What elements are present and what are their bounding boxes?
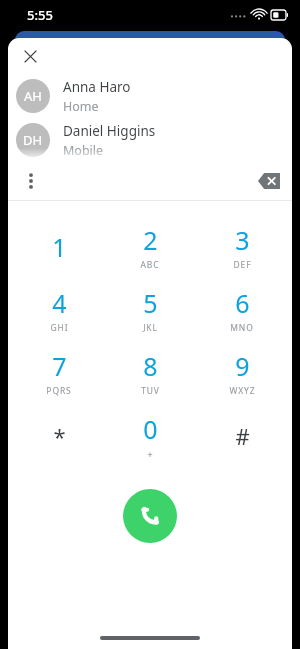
button[interactable]: More options — [12, 162, 50, 200]
staticText: 4 — [52, 286, 67, 320]
button[interactable]: 8 — [109, 341, 191, 404]
staticText: DH — [23, 131, 43, 149]
button[interactable]: 1 — [18, 215, 100, 278]
button[interactable]: DH — [8, 118, 292, 162]
staticText: + — [147, 448, 154, 460]
staticText: ABC — [140, 259, 160, 271]
staticText: 2 — [143, 223, 158, 257]
staticText: MNO — [230, 322, 254, 334]
button[interactable]: Backspace — [250, 162, 288, 200]
staticText: Home — [63, 98, 99, 115]
staticText: JKL — [143, 322, 158, 334]
staticText: WXYZ — [229, 385, 256, 397]
button[interactable]: Call — [123, 489, 177, 543]
button[interactable]: * — [18, 404, 100, 467]
button[interactable]: 9 — [201, 341, 283, 404]
staticText: Daniel Higgins — [63, 122, 156, 140]
staticText: 5:55 — [27, 6, 53, 24]
button[interactable]: Close — [12, 38, 48, 74]
button[interactable]: 7 — [18, 341, 100, 404]
staticText: 7 — [52, 349, 67, 383]
staticText: AH — [24, 87, 42, 105]
staticText: TUV — [141, 385, 160, 397]
staticText: 3 — [235, 223, 250, 257]
button[interactable]: # — [201, 404, 283, 467]
staticText: 8 — [143, 349, 158, 383]
staticText: 9 — [235, 349, 250, 383]
staticText: 1 — [52, 230, 67, 264]
staticText: Mobile — [63, 142, 104, 159]
staticText: PQRS — [46, 385, 72, 397]
staticText: 0 — [143, 412, 158, 446]
button[interactable]: 2 — [109, 215, 191, 278]
staticText: GHI — [50, 322, 69, 334]
button[interactable]: 6 — [201, 278, 283, 341]
staticText: Anna Haro — [63, 78, 131, 96]
staticText: 6 — [235, 286, 250, 320]
staticText: DEF — [233, 259, 252, 271]
staticText: * — [53, 421, 66, 451]
staticText: 5 — [143, 286, 158, 320]
button[interactable]: 4 — [18, 278, 100, 341]
button[interactable]: 5 — [109, 278, 191, 341]
button[interactable]: 3 — [201, 215, 283, 278]
button[interactable]: 0 — [109, 404, 191, 467]
staticText: # — [235, 421, 250, 451]
button[interactable]: AH — [8, 74, 292, 118]
